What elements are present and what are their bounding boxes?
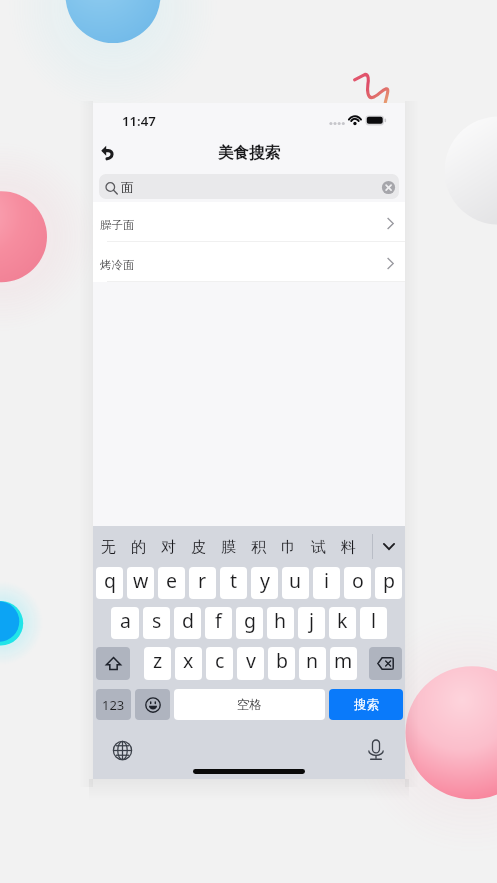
button[interactable]: t (220, 567, 247, 599)
staticText: f (215, 607, 222, 634)
staticText: x (183, 647, 194, 674)
staticText: s (152, 607, 162, 634)
button[interactable]: d (174, 607, 201, 639)
button[interactable]: c (206, 647, 233, 680)
button[interactable]: n (299, 647, 326, 680)
staticText: 烤冷面 (100, 258, 135, 272)
staticText: a (120, 607, 131, 634)
button[interactable]: v (237, 647, 264, 680)
staticText: 积 (251, 538, 266, 557)
staticText: l (371, 607, 377, 634)
button[interactable]: k (329, 607, 356, 639)
button[interactable]: q (96, 567, 123, 599)
button[interactable]: z (144, 647, 171, 680)
staticText: c (215, 647, 225, 674)
staticText: q (104, 567, 116, 594)
staticText: 料 (341, 538, 356, 557)
staticText: m (334, 647, 353, 674)
button[interactable]: s (143, 607, 170, 639)
staticText: u (289, 567, 302, 594)
button[interactable]: 烤冷面 (93, 242, 405, 282)
staticText: r (198, 567, 207, 594)
button[interactable]: 料 (333, 526, 363, 567)
staticText: 面 (121, 179, 134, 195)
button[interactable]: Back (93, 138, 121, 166)
staticText: i (324, 567, 330, 594)
staticText: 皮 (191, 538, 206, 557)
staticText: 臊子面 (100, 218, 135, 232)
staticText: d (182, 607, 194, 634)
staticText: j (309, 607, 315, 634)
button[interactable]: w (127, 567, 154, 599)
staticText: 无 (101, 538, 116, 557)
button[interactable]: x (175, 647, 202, 680)
staticText: z (153, 647, 163, 674)
staticText: t (230, 567, 238, 594)
staticText: 膜 (221, 538, 236, 557)
staticText: 对 (161, 538, 176, 557)
button[interactable]: Voice input (362, 736, 389, 763)
staticText: k (337, 607, 348, 634)
staticText: g (244, 607, 256, 634)
button[interactable]: 对 (153, 526, 183, 567)
button[interactable]: b (268, 647, 295, 680)
button[interactable]: 无 (93, 526, 123, 567)
staticText: b (276, 647, 288, 674)
button[interactable]: m (330, 647, 357, 680)
staticText: 试 (311, 538, 326, 557)
staticText: o (352, 567, 364, 594)
staticText: y (260, 567, 270, 594)
staticText: 123 (102, 696, 125, 714)
button[interactable]: y (251, 567, 278, 599)
button[interactable]: j (298, 607, 325, 639)
button[interactable]: Clear search text (379, 178, 397, 196)
button[interactable]: 搜索 (329, 689, 403, 720)
button[interactable]: 123 (96, 689, 131, 720)
button[interactable]: o (344, 567, 371, 599)
staticText: e (166, 567, 177, 594)
button[interactable]: 皮 (183, 526, 213, 567)
button[interactable]: Delete (369, 647, 402, 680)
staticText: p (383, 567, 395, 594)
button[interactable]: 的 (123, 526, 153, 567)
button[interactable]: u (282, 567, 309, 599)
staticText: 巾 (281, 538, 296, 557)
staticText: v (246, 647, 256, 674)
staticText: w (133, 567, 149, 594)
button[interactable]: 空格 (174, 689, 325, 720)
button[interactable]: r (189, 567, 216, 599)
button[interactable]: i (313, 567, 340, 599)
button[interactable]: g (236, 607, 263, 639)
button[interactable]: Shift (96, 647, 130, 680)
staticText: 空格 (237, 697, 262, 713)
button[interactable]: a (111, 607, 139, 639)
button[interactable]: p (375, 567, 402, 599)
button[interactable]: 面 (99, 174, 399, 199)
staticText: 搜索 (354, 697, 379, 713)
staticText: 11:47 (122, 112, 156, 130)
button[interactable]: e (158, 567, 185, 599)
button[interactable]: Emoji keyboard (135, 689, 170, 720)
button[interactable]: l (360, 607, 387, 639)
button[interactable]: 臊子面 (93, 202, 405, 242)
button[interactable]: Switch keyboard language (109, 737, 136, 764)
staticText: 美食搜索 (218, 143, 280, 163)
button[interactable]: 积 (243, 526, 273, 567)
button[interactable]: h (267, 607, 294, 639)
button[interactable]: Hide keyboard (373, 526, 405, 567)
button[interactable]: 试 (303, 526, 333, 567)
staticText: 的 (131, 538, 146, 557)
button[interactable]: f (205, 607, 232, 639)
staticText: n (306, 647, 319, 674)
button[interactable]: 巾 (273, 526, 303, 567)
staticText: h (274, 607, 287, 634)
button[interactable]: 膜 (213, 526, 243, 567)
